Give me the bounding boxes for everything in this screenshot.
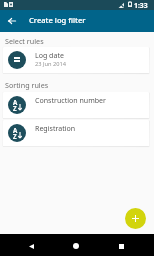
staticText: 23 Jun 2014: [35, 60, 67, 68]
button[interactable]: Home: [66, 236, 86, 256]
staticText: A: [13, 98, 18, 106]
button[interactable]: Recent apps: [111, 236, 131, 256]
staticText: Z: [13, 132, 17, 140]
staticText: A: [13, 126, 18, 134]
button[interactable]: Log date: [3, 47, 149, 73]
staticText: Z: [13, 104, 17, 112]
button[interactable]: Add filter: [125, 208, 146, 229]
staticText: Log date: [35, 50, 64, 60]
staticText: Create log filter: [29, 15, 86, 25]
staticText: Sorting rules: [5, 80, 49, 90]
button[interactable]: A: [3, 120, 149, 146]
staticText: 1:33: [134, 1, 148, 10]
staticText: Registration: [35, 123, 76, 133]
button[interactable]: A: [3, 92, 149, 118]
button[interactable]: Back: [21, 236, 41, 256]
staticText: Construction number: [35, 95, 106, 105]
button[interactable]: Back: [3, 10, 20, 32]
staticText: Select rules: [5, 36, 44, 46]
